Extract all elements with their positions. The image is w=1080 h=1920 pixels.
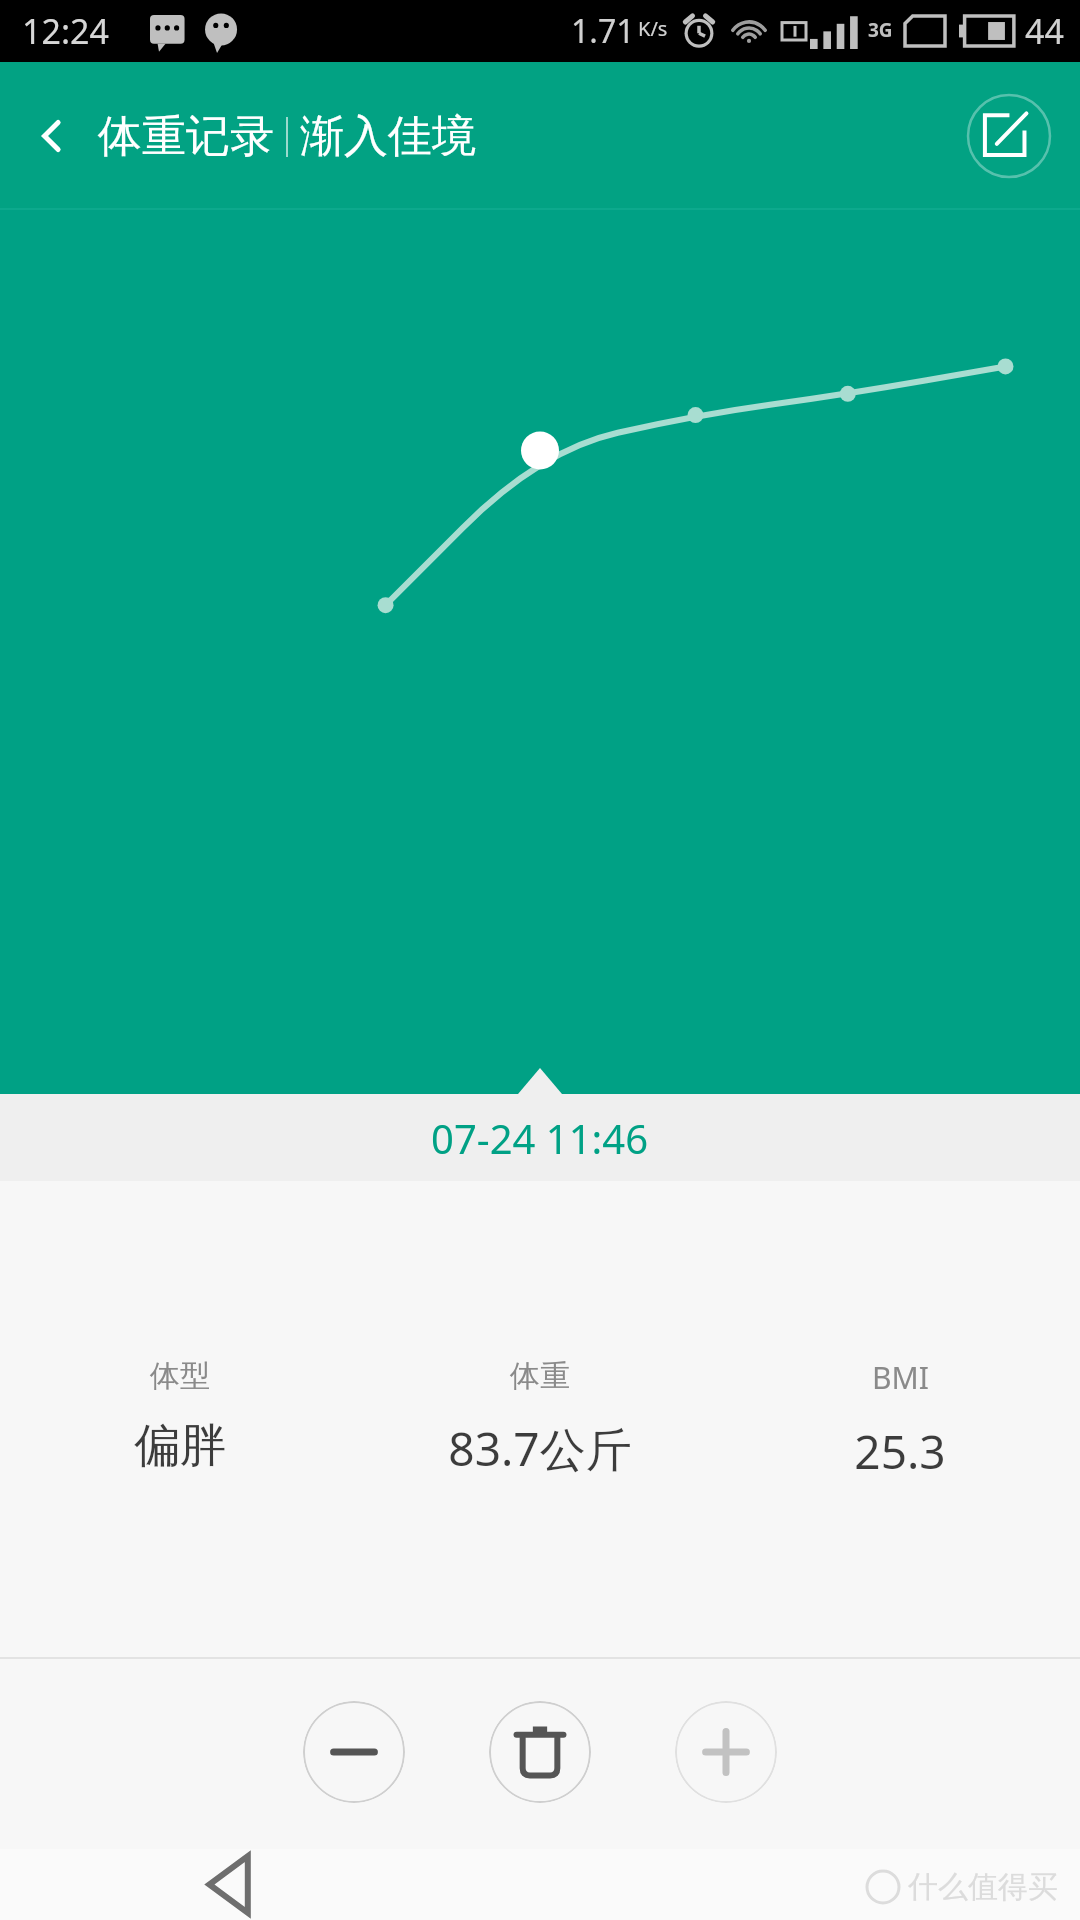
- staticText: BMI: [872, 1357, 929, 1398]
- staticText: K/s: [638, 15, 668, 42]
- staticText: 体重记录: [98, 109, 274, 164]
- button[interactable]: Decrease: [303, 1701, 405, 1803]
- staticText: 渐入佳境: [300, 109, 476, 164]
- staticText: 体重: [510, 1357, 570, 1395]
- staticText: 1.71: [571, 9, 635, 53]
- staticText: 07-24 11:46: [431, 1111, 649, 1165]
- button[interactable]: Delete: [489, 1701, 591, 1803]
- staticText: 12:24: [22, 8, 109, 54]
- staticText: 什么值得买: [908, 1868, 1058, 1906]
- staticText: 44: [1025, 8, 1064, 54]
- staticText: 83.7公斤: [448, 1417, 632, 1480]
- staticText: 3G: [868, 17, 893, 43]
- button[interactable]: Edit: [966, 93, 1052, 179]
- staticText: 偏胖: [134, 1417, 226, 1475]
- staticText: 25.3: [854, 1420, 946, 1483]
- button[interactable]: Back: [178, 1849, 288, 1920]
- staticText: 体型: [150, 1357, 210, 1395]
- button[interactable]: Increase: [675, 1701, 777, 1803]
- button[interactable]: Back: [14, 98, 90, 174]
